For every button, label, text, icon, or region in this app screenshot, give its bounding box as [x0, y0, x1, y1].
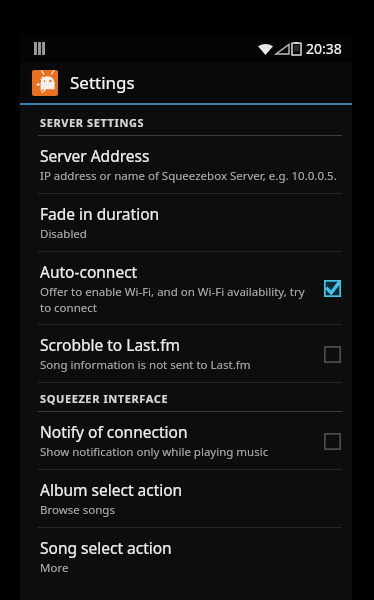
button[interactable]: Notify of connection — [20, 412, 352, 469]
staticText: Offer to enable Wi-Fi, and on Wi-Fi avai… — [40, 284, 312, 315]
staticText: 20:38 — [306, 39, 342, 58]
staticText: More — [40, 560, 69, 576]
button[interactable]: Squeezer app icon — [20, 62, 352, 103]
staticText: Settings — [70, 71, 135, 94]
button[interactable]: Checked — [322, 278, 342, 298]
staticText: Browse songs — [40, 502, 115, 518]
staticText: Fade in duration — [40, 203, 160, 224]
button[interactable]: Fade in duration — [20, 194, 352, 251]
other: Squeezer app icon — [32, 70, 58, 96]
staticText: SERVER SETTINGS — [40, 115, 145, 130]
button[interactable]: Server Address — [20, 136, 352, 193]
staticText: Auto-connect — [40, 261, 138, 282]
staticText: Song information is not sent to Last.fm — [40, 357, 251, 373]
button[interactable]: Song select action — [20, 528, 352, 585]
staticText: Song select action — [40, 537, 172, 558]
button[interactable]: Scrobble to Last.fm — [20, 325, 352, 382]
staticText: SQUEEZER INTERFACE — [40, 391, 169, 406]
button[interactable]: Album select action — [20, 470, 352, 527]
staticText: IP address or name of Squeezebox Server,… — [40, 168, 337, 184]
button[interactable]: Unchecked — [322, 344, 342, 364]
staticText: Album select action — [40, 479, 183, 500]
staticText: Server Address — [40, 145, 150, 166]
button[interactable]: Auto-connect — [20, 252, 352, 324]
button[interactable]: Unchecked — [322, 431, 342, 451]
staticText: Disabled — [40, 226, 87, 242]
staticText: Notify of connection — [40, 421, 188, 442]
staticText: Scrobble to Last.fm — [40, 334, 181, 355]
staticText: Show notification only while playing mus… — [40, 444, 269, 460]
